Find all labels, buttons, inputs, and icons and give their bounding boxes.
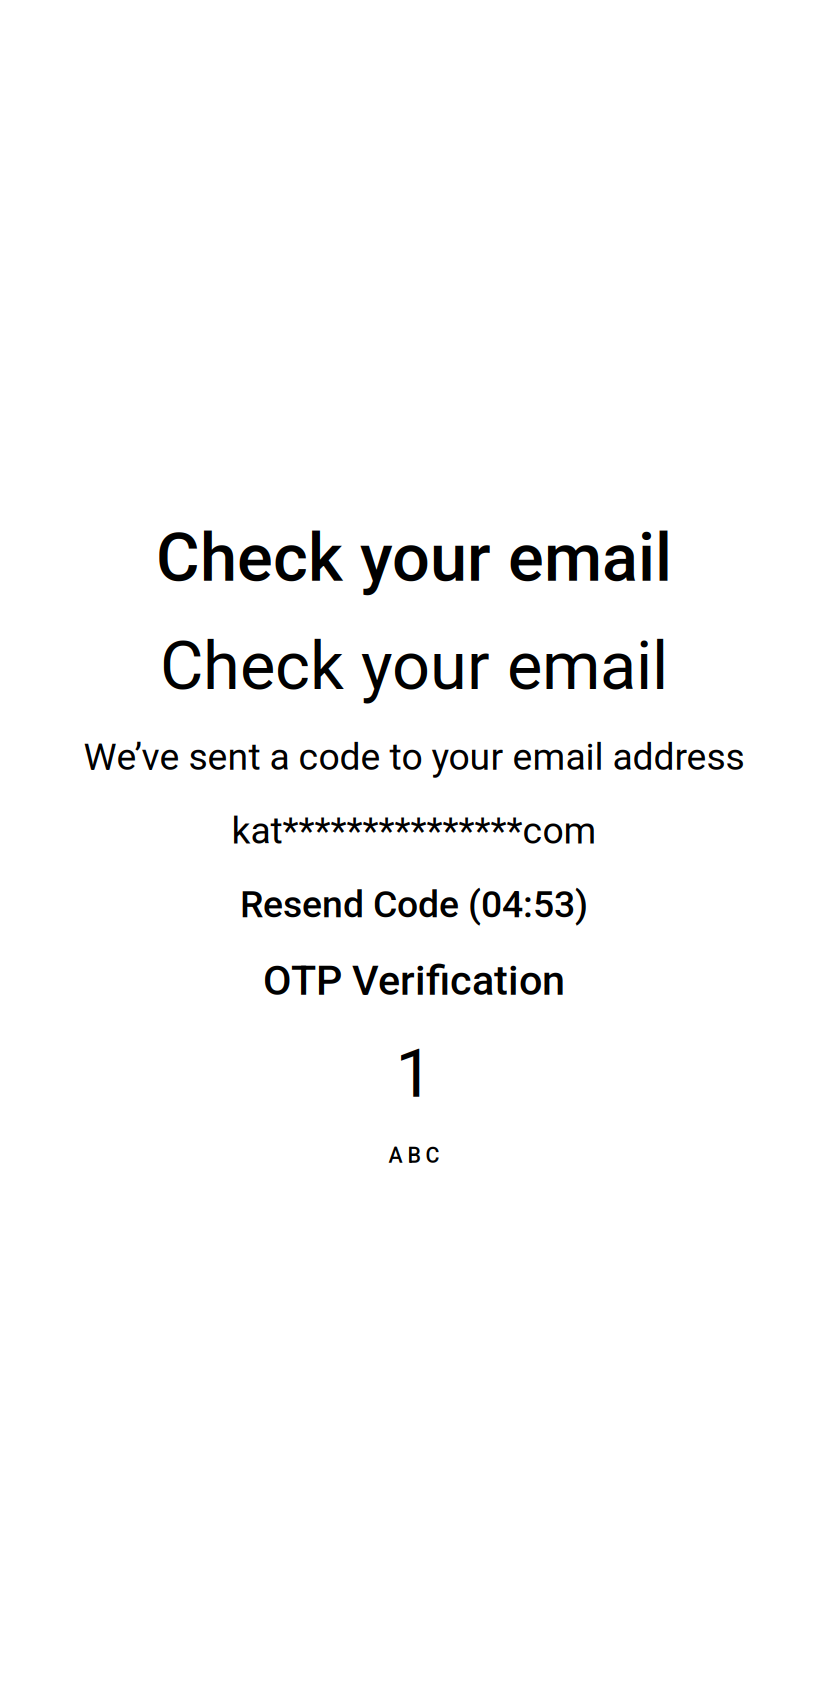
staticText: 1 — [395, 1035, 432, 1113]
staticText: Check your email — [156, 519, 672, 597]
staticText: kat***************com — [231, 809, 596, 853]
staticText: OTP Verification — [263, 956, 565, 1005]
staticText: Check your email — [160, 627, 668, 705]
staticText: A B C — [388, 1143, 439, 1168]
staticText: We’ve sent a code to your email address — [83, 735, 744, 779]
staticText: Resend Code (04:53) — [240, 883, 588, 926]
